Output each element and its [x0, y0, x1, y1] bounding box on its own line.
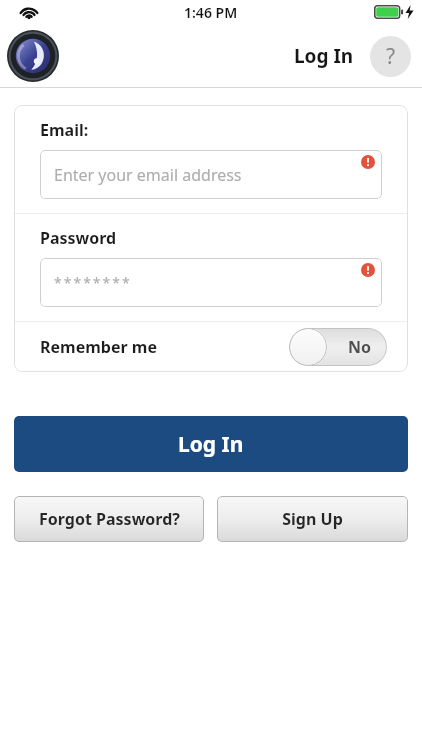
staticText: Log In: [178, 430, 244, 459]
staticText: Remember me: [40, 336, 157, 358]
button[interactable]: Remember me: [14, 322, 408, 372]
staticText: 1:46 PM: [184, 3, 238, 22]
staticText: Password: [40, 227, 117, 249]
staticText: Log In: [294, 43, 354, 69]
staticText: Sign Up: [282, 508, 343, 530]
button[interactable]: Forgot Password?: [14, 496, 204, 542]
button[interactable]: Sign Up: [217, 496, 408, 542]
staticText: Forgot Password?: [39, 508, 180, 530]
button[interactable]: ********: [40, 258, 382, 307]
staticText: ?: [386, 42, 396, 71]
button[interactable]: App logo: [7, 30, 59, 82]
button[interactable]: Remember me toggle, off: [289, 328, 387, 366]
button[interactable]: Help: [370, 36, 411, 77]
staticText: Enter your email address: [54, 164, 242, 186]
button[interactable]: Enter your email address: [40, 150, 382, 199]
button[interactable]: Log In: [14, 416, 408, 472]
staticText: ********: [54, 273, 132, 292]
staticText: Email:: [40, 119, 89, 141]
staticText: No: [348, 336, 372, 358]
